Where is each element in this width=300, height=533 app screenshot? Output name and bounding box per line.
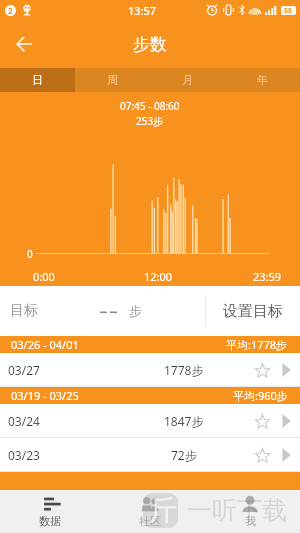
button[interactable]: Favorite [250, 443, 274, 467]
staticText: 07:45 - 08:60 [120, 99, 180, 113]
button[interactable]: 03/23 [0, 438, 300, 471]
staticText: 23:59 [253, 269, 282, 284]
button[interactable]: Favorite [250, 358, 274, 382]
button[interactable]: 月 [150, 68, 225, 92]
button[interactable]: 社区 [100, 490, 200, 533]
staticText: 步 [129, 303, 142, 319]
button[interactable]: Details [275, 444, 297, 466]
staticText: 一听下载 [187, 495, 287, 526]
staticText: 03/23 [8, 447, 40, 463]
staticText: 斤 [149, 493, 177, 528]
staticText: 03/26 - 04/01 [11, 337, 79, 352]
button[interactable]: Details [275, 359, 297, 381]
staticText: 步数 [133, 34, 167, 55]
staticText: 平均:960步 [233, 388, 288, 403]
staticText: 0 [27, 247, 33, 261]
staticText: 月 [182, 73, 193, 87]
button[interactable]: 日 [0, 68, 75, 92]
staticText: 周 [107, 73, 118, 87]
staticText: 03/27 [8, 362, 40, 378]
button[interactable]: 03/27 [0, 353, 300, 386]
staticText: 03/24 [8, 413, 40, 429]
staticText: 日 [32, 73, 43, 87]
staticText: 03/19 - 03/25 [11, 388, 79, 403]
staticText: 1778步 [164, 362, 204, 378]
button[interactable]: 周 [75, 68, 150, 92]
staticText: 平均:1778步 [226, 337, 288, 352]
staticText: 目标 [10, 302, 38, 320]
button[interactable]: Details [275, 410, 297, 432]
staticText: 55 [284, 6, 293, 15]
staticText: 253步 [136, 114, 164, 128]
staticText: 2 [8, 5, 13, 16]
button[interactable]: 我 [200, 490, 300, 533]
button[interactable]: 03/24 [0, 404, 300, 437]
button[interactable]: 目标 [0, 286, 205, 336]
staticText: 年 [257, 73, 268, 87]
staticText: 0:00 [33, 269, 55, 284]
button[interactable]: Back [2, 22, 46, 66]
staticText: 12:00 [144, 269, 173, 284]
staticText: 数据 [39, 514, 61, 528]
staticText: 社区 [139, 514, 161, 528]
staticText: 设置目标 [223, 302, 283, 321]
staticText: 72步 [171, 447, 197, 463]
staticText: 我 [245, 514, 256, 528]
button[interactable]: 年 [225, 68, 300, 92]
staticText: 13:57 [128, 3, 157, 18]
button[interactable]: Favorite [250, 409, 274, 433]
staticText: 1847步 [164, 413, 204, 429]
button[interactable]: 设置目标 [206, 286, 300, 336]
button[interactable]: 数据 [0, 490, 100, 533]
